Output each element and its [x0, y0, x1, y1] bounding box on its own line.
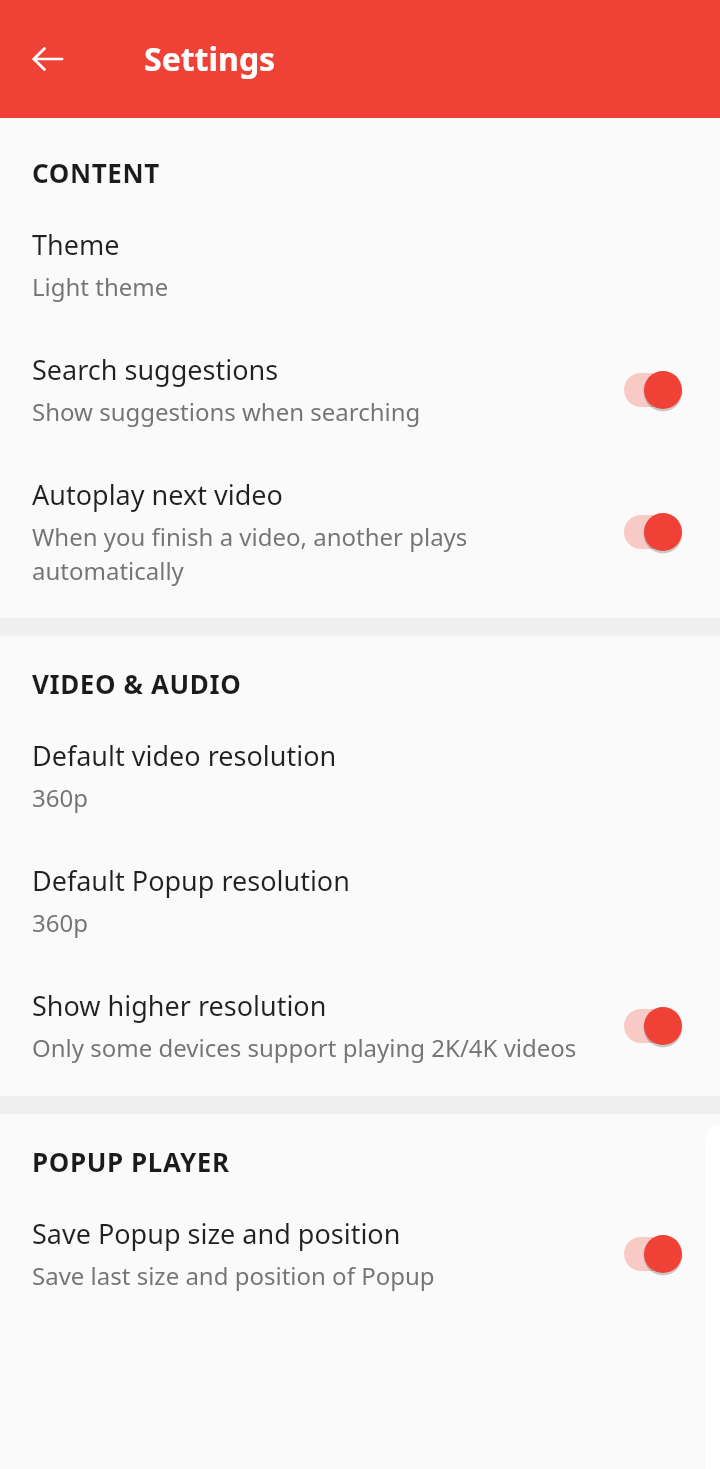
staticText: Default video resolution: [32, 737, 337, 774]
button[interactable]: Theme: [0, 196, 720, 321]
staticText: 360p: [32, 906, 88, 939]
staticText: Theme: [32, 226, 120, 263]
staticText: POPUP PLAYER: [32, 1144, 230, 1179]
button[interactable]: Show higher resolution: [0, 957, 720, 1082]
button[interactable]: Autoplay next video: [0, 446, 720, 605]
staticText: When you finish a video, another plays a…: [32, 520, 532, 587]
button[interactable]: Save Popup size and position: [0, 1185, 720, 1310]
staticText: VIDEO & AUDIO: [32, 666, 242, 701]
staticText: Settings: [144, 37, 276, 81]
staticText: Save last size and position of Popup: [32, 1259, 435, 1292]
button[interactable]: Toggle: [622, 1232, 694, 1276]
staticText: CONTENT: [32, 155, 160, 190]
button[interactable]: Search suggestions: [0, 321, 720, 446]
button[interactable]: Toggle: [622, 510, 694, 554]
staticText: Search suggestions: [32, 351, 279, 388]
staticText: Save Popup size and position: [32, 1215, 401, 1252]
button[interactable]: Toggle: [622, 1004, 694, 1048]
staticText: Autoplay next video: [32, 476, 283, 513]
staticText: 360p: [32, 781, 88, 814]
staticText: Default Popup resolution: [32, 862, 350, 899]
button[interactable]: Toggle: [622, 368, 694, 412]
staticText: Show suggestions when searching: [32, 395, 421, 428]
button[interactable]: Back: [20, 31, 76, 87]
staticText: Only some devices support playing 2K/4K …: [32, 1031, 577, 1064]
button[interactable]: Default video resolution: [0, 707, 720, 832]
staticText: Light theme: [32, 270, 169, 303]
button[interactable]: Default Popup resolution: [0, 832, 720, 957]
staticText: Show higher resolution: [32, 987, 327, 1024]
